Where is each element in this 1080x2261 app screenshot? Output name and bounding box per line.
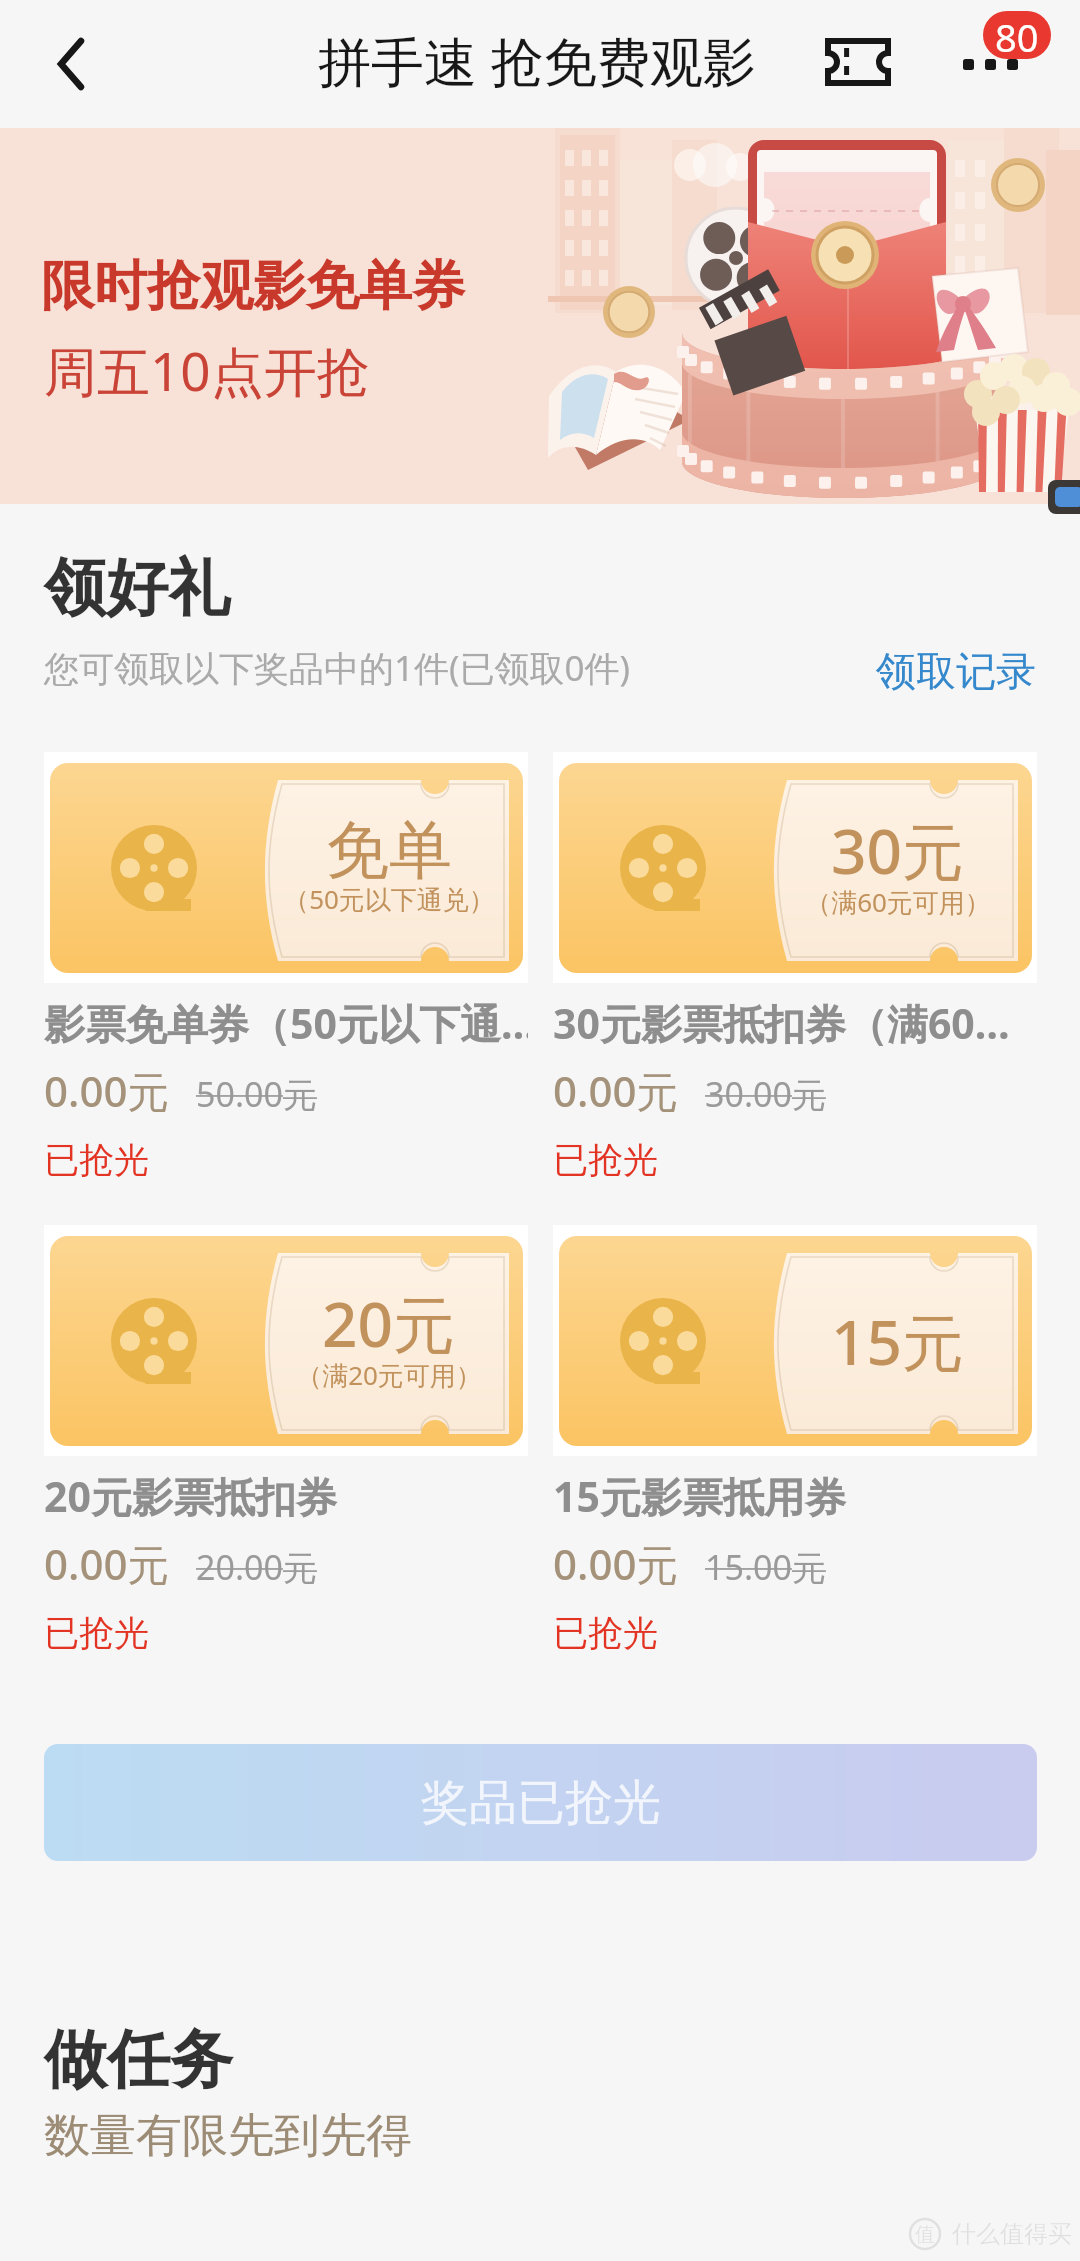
button[interactable]: My tickets xyxy=(818,31,898,93)
button[interactable]: 奖品已抢光 xyxy=(44,1744,1037,1861)
staticText: 已抢光 xyxy=(553,1138,658,1182)
staticText: 值 xyxy=(915,2222,935,2247)
staticText: 奖品已抢光 xyxy=(421,1773,661,1833)
staticText: 20.00元 xyxy=(196,1544,317,1590)
staticText: 限时抢观影免单券 xyxy=(41,253,465,320)
staticText: 数量有限先到先得 xyxy=(44,2107,412,2165)
staticText: 0.00元 xyxy=(44,1535,170,1592)
staticText: 拼手速 抢免费观影 xyxy=(318,24,756,96)
staticText: 0.00元 xyxy=(553,1062,679,1119)
staticText: 20元影票抵扣券 xyxy=(44,1468,337,1524)
staticText: 20元 xyxy=(322,1281,455,1366)
button[interactable]: More options xyxy=(950,6,1060,86)
staticText: 已抢光 xyxy=(44,1611,149,1655)
button[interactable]: 免单 xyxy=(44,752,528,1192)
staticText: 领好礼 xyxy=(44,549,230,627)
button[interactable]: 15元 xyxy=(553,1225,1037,1665)
staticText: 免单 xyxy=(326,811,452,890)
staticText: 15元影票抵用券 xyxy=(553,1468,846,1524)
staticText: （满60元可用） xyxy=(805,884,991,920)
button[interactable]: 20元 xyxy=(44,1225,528,1665)
staticText: 30元影票抵扣券（满60… xyxy=(553,995,1010,1051)
staticText: 影票免单券（50元以下通… xyxy=(44,995,528,1051)
staticText: 30.00元 xyxy=(705,1071,826,1117)
staticText: 已抢光 xyxy=(44,1138,149,1182)
button[interactable]: 领取记录 xyxy=(876,646,1036,696)
button[interactable]: Back xyxy=(33,25,109,101)
staticText: 0.00元 xyxy=(44,1062,170,1119)
staticText: 已抢光 xyxy=(553,1611,658,1655)
staticText: （50元以下通兑） xyxy=(283,881,495,917)
staticText: 15.00元 xyxy=(705,1544,826,1590)
button[interactable]: 30元 xyxy=(553,752,1037,1192)
staticText: 15元 xyxy=(831,1299,964,1384)
staticText: 50.00元 xyxy=(196,1071,317,1117)
staticText: 30元 xyxy=(831,808,964,893)
staticText: 什么值得买 xyxy=(952,2219,1072,2249)
staticText: 领取记录 xyxy=(876,646,1036,696)
staticText: 0.00元 xyxy=(553,1535,679,1592)
staticText: （满20元可用） xyxy=(296,1357,482,1393)
staticText: 您可领取以下奖品中的1件(已领取0件) xyxy=(44,644,631,692)
staticText: 80 xyxy=(995,11,1039,59)
staticText: 做任务 xyxy=(44,2020,233,2099)
staticText: 周五10点开抢 xyxy=(44,334,370,406)
